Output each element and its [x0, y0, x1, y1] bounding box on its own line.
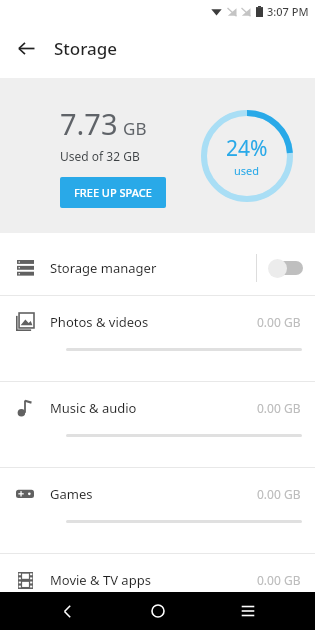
staticText: GB	[123, 117, 147, 140]
button[interactable]: Home	[134, 592, 182, 630]
button[interactable]: Recent apps	[224, 592, 272, 630]
staticText: 7.73	[60, 104, 118, 143]
staticText: Photos & videos	[50, 313, 257, 331]
button[interactable]: Storage manager toggle	[257, 248, 315, 288]
button[interactable]: Back	[43, 592, 91, 630]
staticText: 24%	[226, 134, 268, 163]
staticText: Storage manager	[50, 259, 256, 277]
staticText: FREE UP SPACE	[74, 185, 152, 200]
staticText: Storage	[54, 37, 118, 60]
staticText: Used of 32 GB	[60, 148, 140, 164]
button[interactable]: Movie & TV apps	[0, 554, 315, 630]
staticText: 3:07 PM	[267, 4, 309, 19]
button[interactable]: Back	[10, 32, 42, 64]
staticText: 0.00 GB	[257, 486, 301, 502]
button[interactable]: Games	[0, 468, 315, 553]
staticText: Music & audio	[50, 399, 257, 417]
button[interactable]: Storage manager	[0, 241, 315, 295]
staticText: 0.00 GB	[257, 400, 301, 416]
button[interactable]: FREE UP SPACE	[60, 177, 166, 208]
staticText: 0.00 GB	[257, 314, 301, 330]
staticText: 0.00 GB	[257, 572, 301, 588]
staticText: used	[234, 163, 260, 178]
staticText: Games	[50, 485, 257, 503]
button[interactable]: Music & audio	[0, 382, 315, 467]
staticText: Movie & TV apps	[50, 571, 257, 589]
button[interactable]: Photos & videos	[0, 296, 315, 381]
